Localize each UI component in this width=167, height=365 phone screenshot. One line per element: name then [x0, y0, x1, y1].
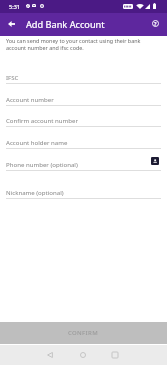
staticText: You can send money to your contact using…	[6, 37, 161, 51]
button[interactable]: Back	[1, 13, 22, 34]
button[interactable]: Pick contact	[150, 156, 159, 165]
staticText: Add Bank Account	[26, 18, 105, 31]
button[interactable]: Home	[71, 345, 95, 365]
button[interactable]: Back	[38, 345, 62, 365]
staticText: Phone number (optional)	[6, 160, 78, 168]
staticText: IFSC	[6, 73, 19, 81]
staticText: 5:31	[9, 3, 20, 10]
button[interactable]: Recents	[103, 345, 127, 365]
staticText: Confirm account number	[6, 116, 78, 124]
staticText: CONFIRM	[68, 329, 99, 337]
staticText: ?	[154, 20, 157, 27]
staticText: Nickname (optional)	[6, 188, 64, 196]
staticText: Account holder name	[6, 138, 68, 146]
staticText: Account number	[6, 95, 54, 103]
button[interactable]: Help	[145, 13, 166, 34]
